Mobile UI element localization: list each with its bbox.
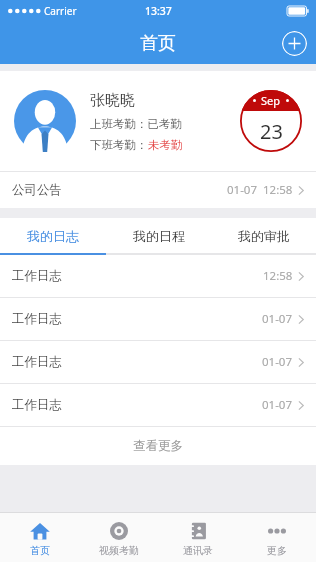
button[interactable]: 工作日志 bbox=[0, 341, 316, 383]
button[interactable]: 查看更多 bbox=[0, 427, 316, 465]
button[interactable]: 更多 bbox=[237, 513, 316, 562]
staticText: 工作日志 bbox=[12, 354, 62, 370]
staticText: 更多 bbox=[267, 544, 287, 557]
button[interactable]: 我的日志 bbox=[0, 218, 106, 253]
staticText: 工作日志 bbox=[12, 397, 62, 413]
staticText: 我的日志 bbox=[27, 228, 79, 244]
button[interactable]: 张晓晓 bbox=[0, 71, 316, 171]
staticText: 01-07 bbox=[262, 397, 293, 413]
staticText: 公司公告 bbox=[12, 182, 62, 198]
staticText: Carrier bbox=[44, 4, 77, 18]
button[interactable]: 通讯录 bbox=[158, 513, 237, 562]
button[interactable]: 工作日志 bbox=[0, 384, 316, 426]
staticText: 01-07 bbox=[262, 311, 293, 327]
staticText: 23 bbox=[260, 118, 283, 145]
staticText: 张晓晓 bbox=[90, 91, 135, 110]
button[interactable]: 视频考勤 bbox=[79, 513, 158, 562]
staticText: 01-07 12:58 bbox=[227, 182, 293, 198]
staticText: 下班考勤： bbox=[90, 138, 148, 152]
staticText: 12:58 bbox=[263, 268, 293, 284]
button[interactable]: Add bbox=[282, 31, 307, 56]
staticText: 工作日志 bbox=[12, 268, 62, 284]
staticText: 首页 bbox=[30, 544, 50, 557]
button[interactable]: 我的审批 bbox=[211, 218, 316, 253]
staticText: 通讯录 bbox=[183, 544, 213, 557]
button[interactable]: 工作日志 bbox=[0, 298, 316, 340]
button[interactable]: 公司公告 bbox=[0, 172, 316, 208]
staticText: Sep bbox=[261, 93, 281, 108]
staticText: 01-07 bbox=[262, 354, 293, 370]
staticText: 我的日程 bbox=[133, 228, 185, 244]
staticText: 首页 bbox=[140, 32, 176, 55]
button[interactable]: 我的日程 bbox=[106, 218, 211, 253]
staticText: 我的审批 bbox=[238, 228, 290, 244]
staticText: 未考勤 bbox=[148, 138, 183, 152]
staticText: 视频考勤 bbox=[99, 544, 139, 557]
staticText: 13:37 bbox=[145, 4, 172, 18]
staticText: 查看更多 bbox=[133, 438, 183, 454]
button[interactable]: 工作日志 bbox=[0, 255, 316, 297]
button[interactable]: 首页 bbox=[0, 513, 79, 562]
staticText: 上班考勤：已考勤 bbox=[90, 117, 182, 131]
staticText: 工作日志 bbox=[12, 311, 62, 327]
